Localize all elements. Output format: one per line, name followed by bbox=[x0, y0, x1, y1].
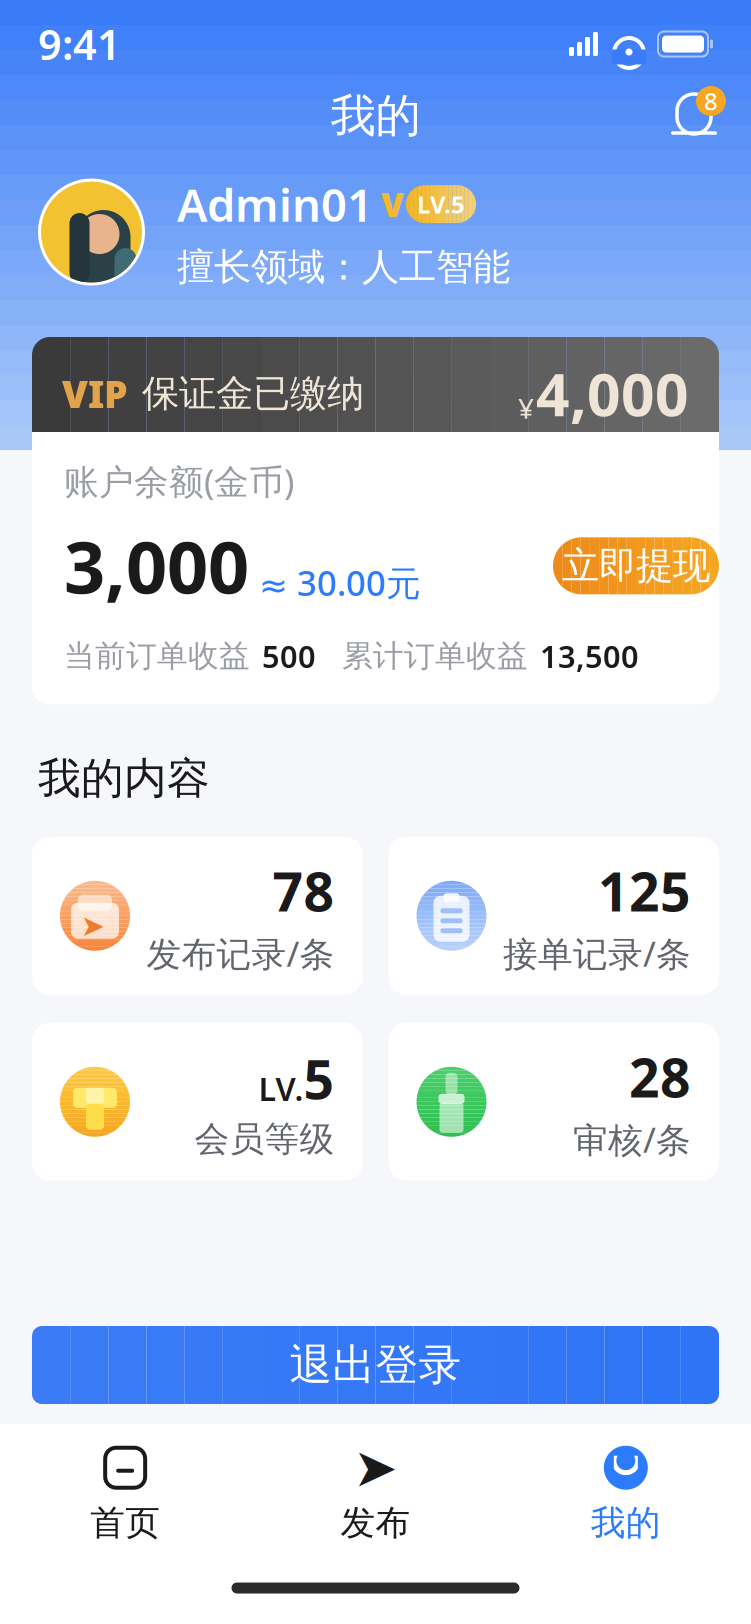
staticText: 我的 bbox=[591, 1502, 661, 1544]
button[interactable]: ➤ bbox=[250, 1432, 501, 1556]
staticText: ¥ bbox=[518, 389, 534, 426]
staticText: 发布 bbox=[340, 1502, 410, 1544]
staticText: 500 bbox=[262, 636, 316, 676]
staticText: ➤ bbox=[353, 1437, 398, 1498]
staticText: 会员等级 bbox=[194, 1118, 334, 1160]
staticText: 立即提现 bbox=[562, 543, 710, 589]
button[interactable]: Notifications bbox=[661, 85, 727, 147]
staticText: 3,000 bbox=[64, 518, 249, 614]
button[interactable]: 28 bbox=[388, 1023, 719, 1181]
staticText: 5 bbox=[303, 1043, 334, 1114]
staticText: 我的内容 bbox=[38, 752, 210, 805]
staticText: 接单记录/条 bbox=[503, 930, 691, 976]
staticText: 13,500 bbox=[540, 636, 639, 676]
staticText: 累计订单收益 bbox=[342, 637, 528, 675]
staticText: 首页 bbox=[90, 1502, 160, 1544]
button[interactable]: ➤ bbox=[32, 837, 362, 995]
button[interactable]: 首页 bbox=[0, 1432, 250, 1556]
staticText: 退出登录 bbox=[289, 1339, 461, 1391]
staticText: ≈ 30.00元 bbox=[259, 560, 421, 606]
staticText: 审核/条 bbox=[573, 1116, 691, 1162]
staticText: LV. bbox=[258, 1067, 303, 1110]
staticText: 8 bbox=[704, 85, 718, 117]
button[interactable]: 我的 bbox=[501, 1432, 751, 1556]
staticText: 9:41 bbox=[38, 17, 121, 71]
button[interactable]: 退出登录 bbox=[32, 1326, 719, 1404]
staticText: LV.5 bbox=[417, 188, 465, 220]
staticText: Admin01 bbox=[177, 174, 373, 234]
staticText: 78 bbox=[272, 855, 334, 926]
staticText: 账户余额(金币) bbox=[64, 458, 294, 504]
staticText: 28 bbox=[629, 1041, 691, 1112]
staticText: 发布记录/条 bbox=[146, 930, 334, 976]
staticText: 我的 bbox=[330, 88, 420, 144]
button[interactable]: 125 bbox=[388, 837, 719, 995]
button[interactable]: LV. bbox=[32, 1023, 362, 1181]
staticText: 保证金已缴纳 bbox=[142, 371, 364, 416]
staticText: 4,000 bbox=[536, 354, 689, 432]
staticText: 当前订单收益 bbox=[64, 637, 250, 675]
staticText: 125 bbox=[598, 855, 691, 926]
staticText: ➤ bbox=[80, 909, 105, 942]
staticText: VIP bbox=[62, 369, 128, 418]
staticText: V bbox=[381, 182, 404, 226]
staticText: 擅长领域：人工智能 bbox=[177, 244, 510, 290]
button[interactable]: 立即提现 bbox=[553, 537, 719, 594]
